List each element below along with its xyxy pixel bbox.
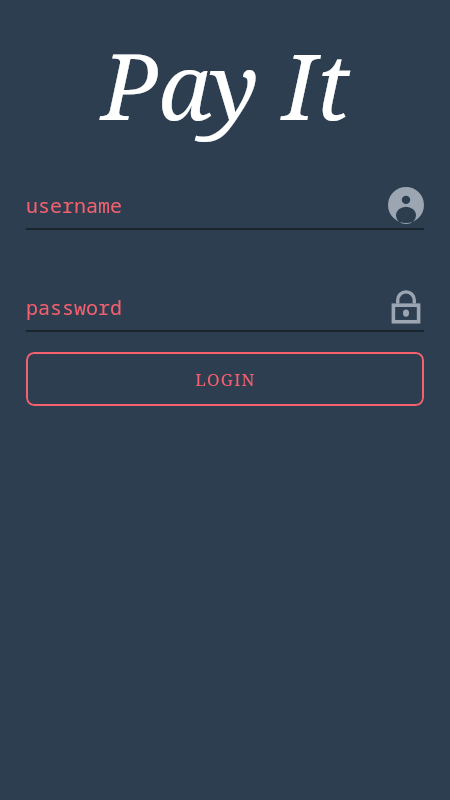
button[interactable]: password xyxy=(26,284,424,332)
button[interactable]: username xyxy=(26,182,424,230)
other: Account xyxy=(388,187,424,223)
button[interactable]: LOGIN xyxy=(26,352,424,406)
staticText: LOGIN xyxy=(195,368,256,391)
other: Password xyxy=(388,289,424,325)
staticText: username xyxy=(26,192,388,219)
staticText: password xyxy=(26,294,388,321)
staticText: Pay It xyxy=(101,22,350,147)
